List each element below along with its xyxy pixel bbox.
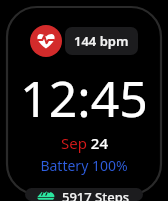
button[interactable]: 5917 Steps [25, 188, 143, 201]
staticText: 5917 Steps [62, 188, 130, 201]
staticText: Sep 24 [61, 133, 108, 153]
button[interactable]: 144 bpm [65, 27, 138, 55]
button[interactable]: Battery 100% [40, 156, 128, 175]
button[interactable]: Heart rate [30, 25, 62, 57]
staticText: 12:45 [20, 64, 148, 132]
staticText: 144 bpm [74, 32, 129, 50]
